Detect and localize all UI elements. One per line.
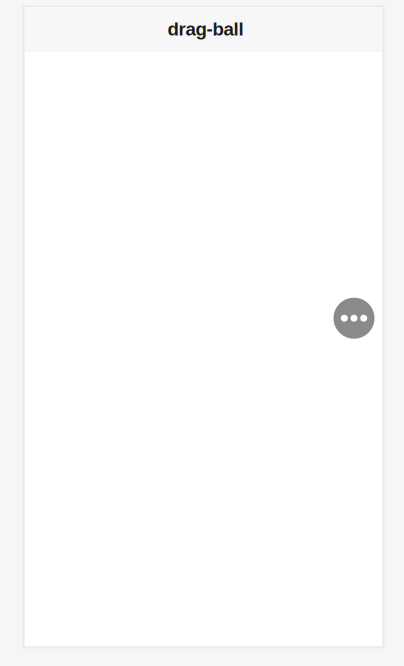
staticText: drag-ball [167, 19, 243, 39]
button[interactable]: Drag ball menu [333, 298, 374, 339]
